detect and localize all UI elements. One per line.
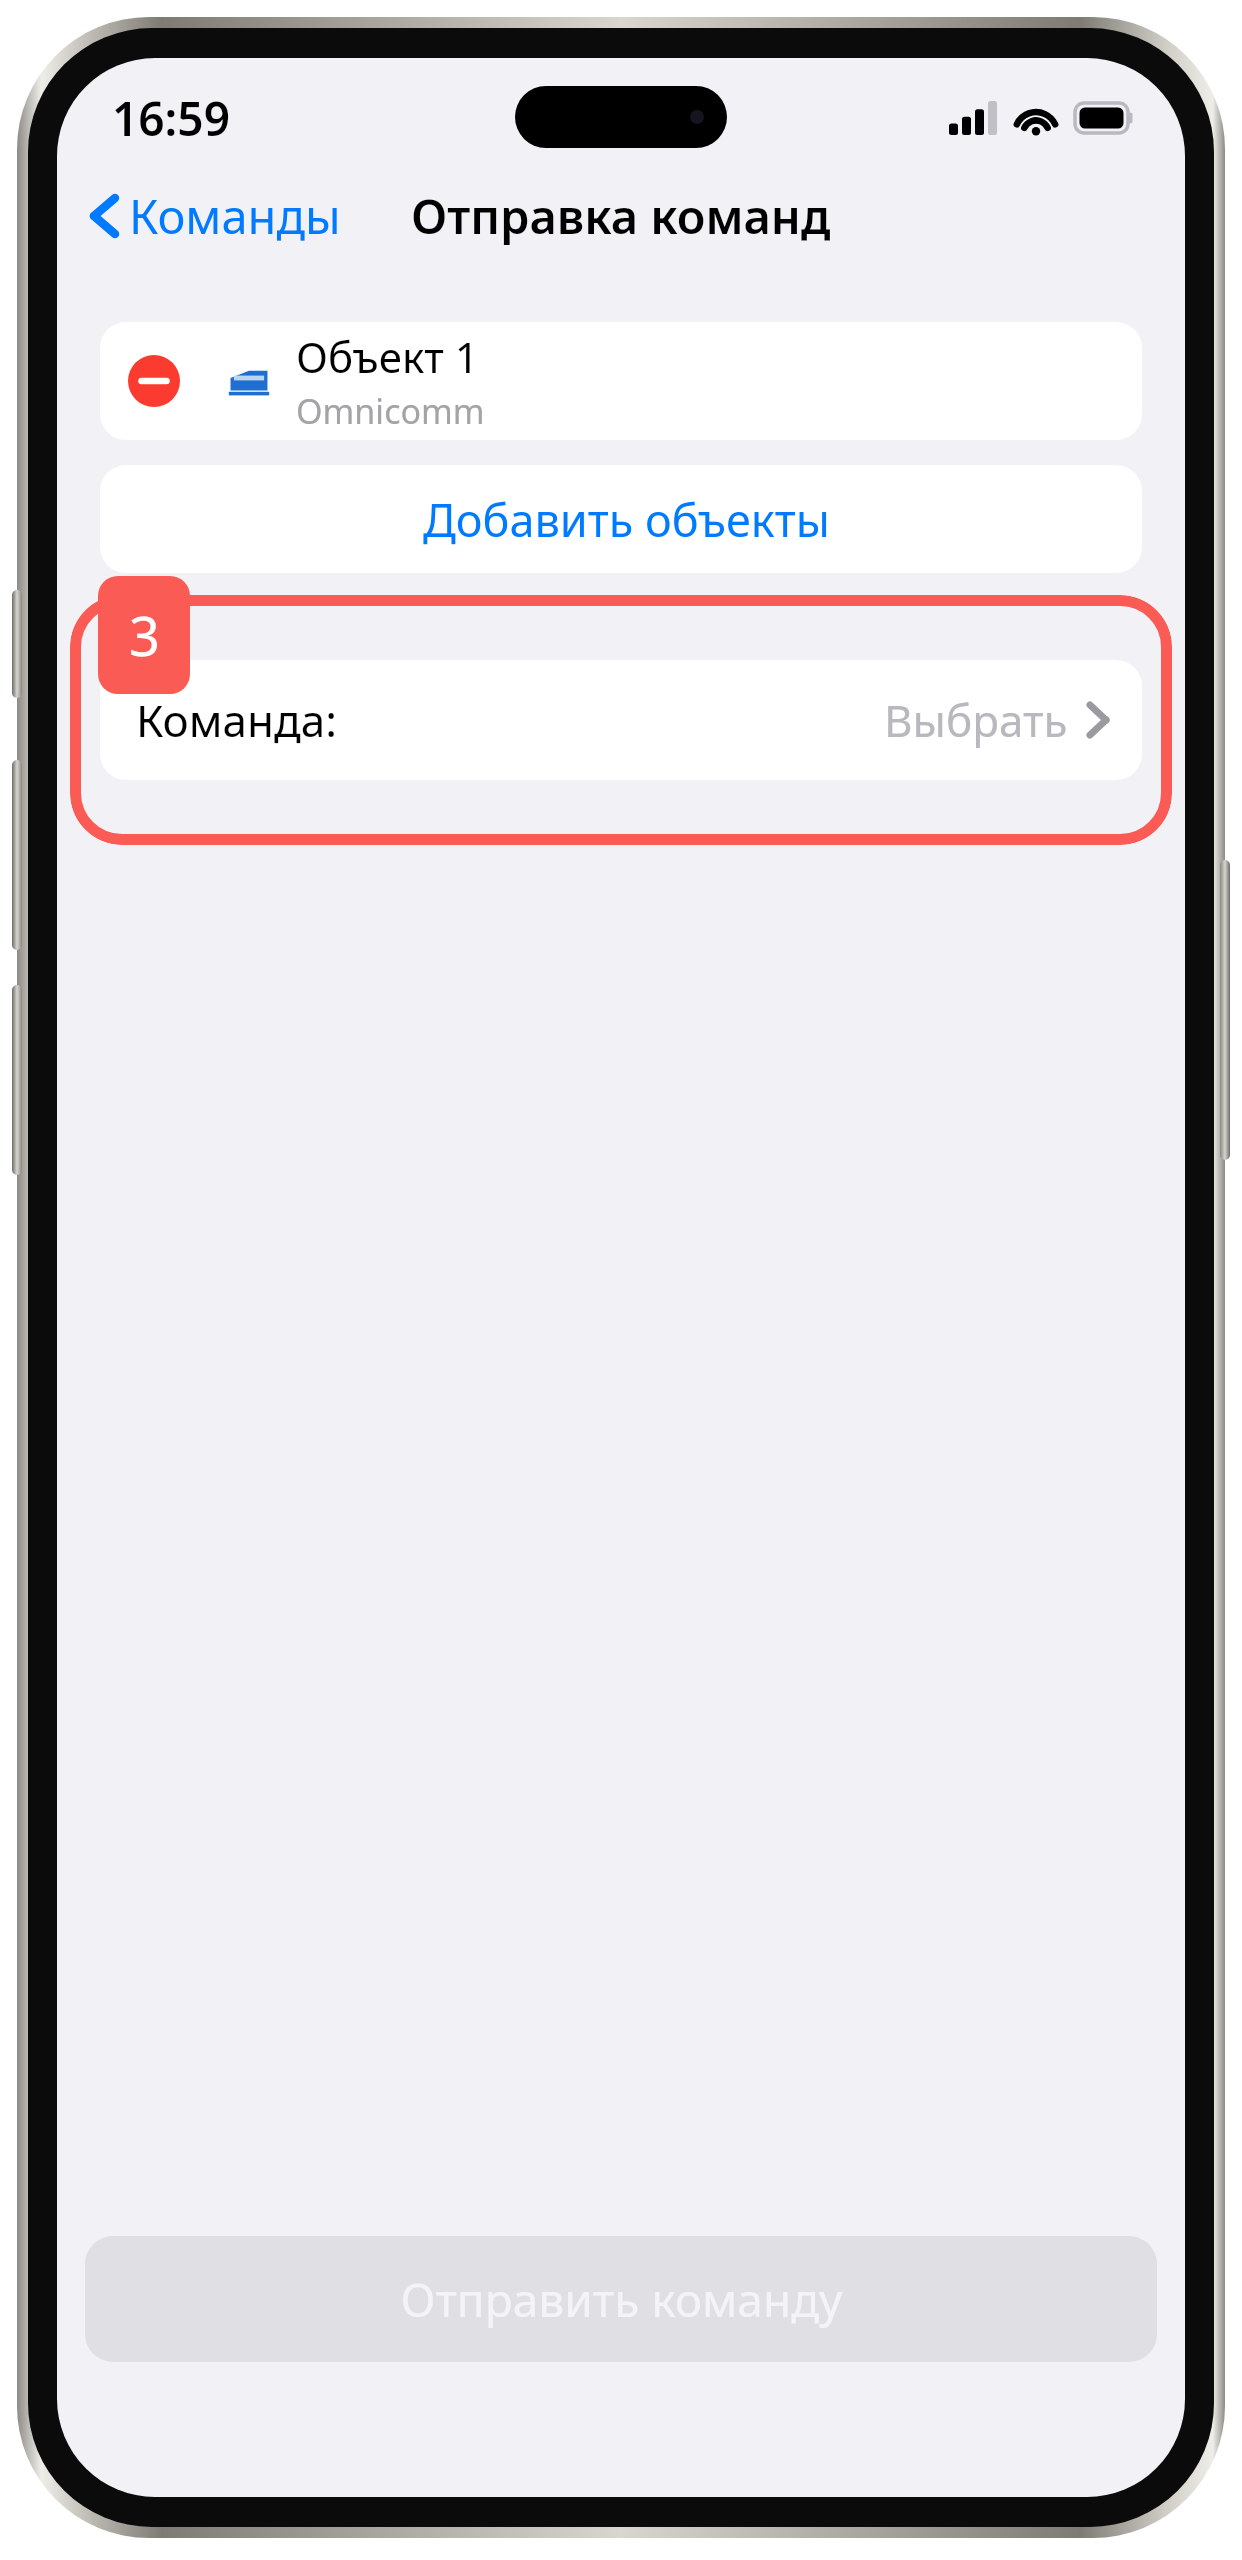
staticText: Отправить команду xyxy=(400,2268,843,2331)
staticText: Команды xyxy=(129,184,341,248)
staticText: Команда: xyxy=(136,690,337,750)
button[interactable]: Добавить объекты xyxy=(100,465,1142,573)
button[interactable]: Отправить команду xyxy=(85,2236,1157,2362)
staticText: Объект 1 xyxy=(296,328,479,385)
button[interactable]: Команды xyxy=(57,176,353,256)
staticText: 3 xyxy=(129,598,160,672)
staticText: Omnicomm xyxy=(296,388,485,434)
staticText: Выбрать xyxy=(884,690,1068,750)
button[interactable]: Удалить объект xyxy=(100,322,1142,440)
staticText: Добавить объекты xyxy=(423,489,830,550)
button[interactable]: Команда: xyxy=(100,660,1142,780)
button[interactable]: Удалить объект xyxy=(128,355,180,407)
staticText: 16:59 xyxy=(112,87,230,150)
staticText: Отправка команд xyxy=(411,184,831,248)
